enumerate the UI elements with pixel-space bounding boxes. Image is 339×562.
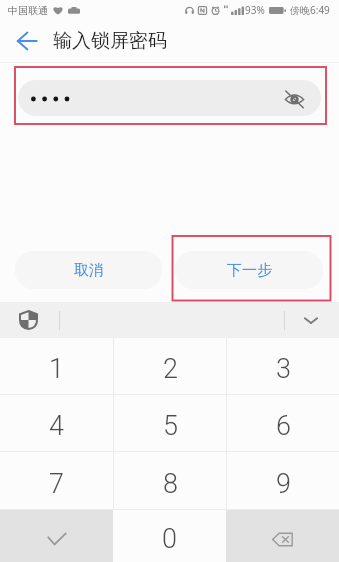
button[interactable]: 4 xyxy=(0,395,113,451)
staticText: 下一步 xyxy=(227,261,272,280)
button[interactable]: 9 xyxy=(227,452,339,509)
staticText: 93% xyxy=(245,3,265,17)
staticText: 6 xyxy=(276,410,291,442)
button[interactable]: 3 xyxy=(227,338,339,394)
button[interactable]: Hide keyboard xyxy=(299,308,323,332)
staticText: 0 xyxy=(162,523,177,555)
staticText: 3 xyxy=(276,353,291,385)
button[interactable]: 0 xyxy=(113,510,226,562)
button[interactable]: 取消 xyxy=(15,251,162,289)
button[interactable]: 1 xyxy=(0,338,113,394)
button[interactable]: Security xyxy=(19,310,37,330)
staticText: 1 xyxy=(49,353,64,385)
button[interactable]: 2 xyxy=(114,338,226,394)
button[interactable]: Back xyxy=(0,20,48,62)
staticText: 7 xyxy=(49,468,64,500)
button[interactable]: 5 xyxy=(114,395,226,451)
button[interactable]: 7 xyxy=(0,452,113,509)
staticText: 输入锁屏密码 xyxy=(53,29,167,53)
button[interactable]: Backspace xyxy=(226,510,339,562)
staticText: 8 xyxy=(163,468,178,500)
button[interactable]: 下一步 xyxy=(175,251,323,289)
staticText: 傍晚6:49 xyxy=(290,3,330,17)
button[interactable]: Done xyxy=(0,510,113,562)
button[interactable]: 6 xyxy=(227,395,339,451)
staticText: 取消 xyxy=(74,261,104,280)
staticText: 5 xyxy=(163,410,178,442)
staticText: 中国联通 xyxy=(8,4,48,17)
button[interactable]: Show password xyxy=(18,80,321,116)
staticText: 2 xyxy=(163,353,178,385)
button[interactable]: 8 xyxy=(114,452,226,509)
staticText: 4 xyxy=(49,410,64,442)
button[interactable]: Show password xyxy=(282,86,306,110)
staticText: 9 xyxy=(276,468,291,500)
